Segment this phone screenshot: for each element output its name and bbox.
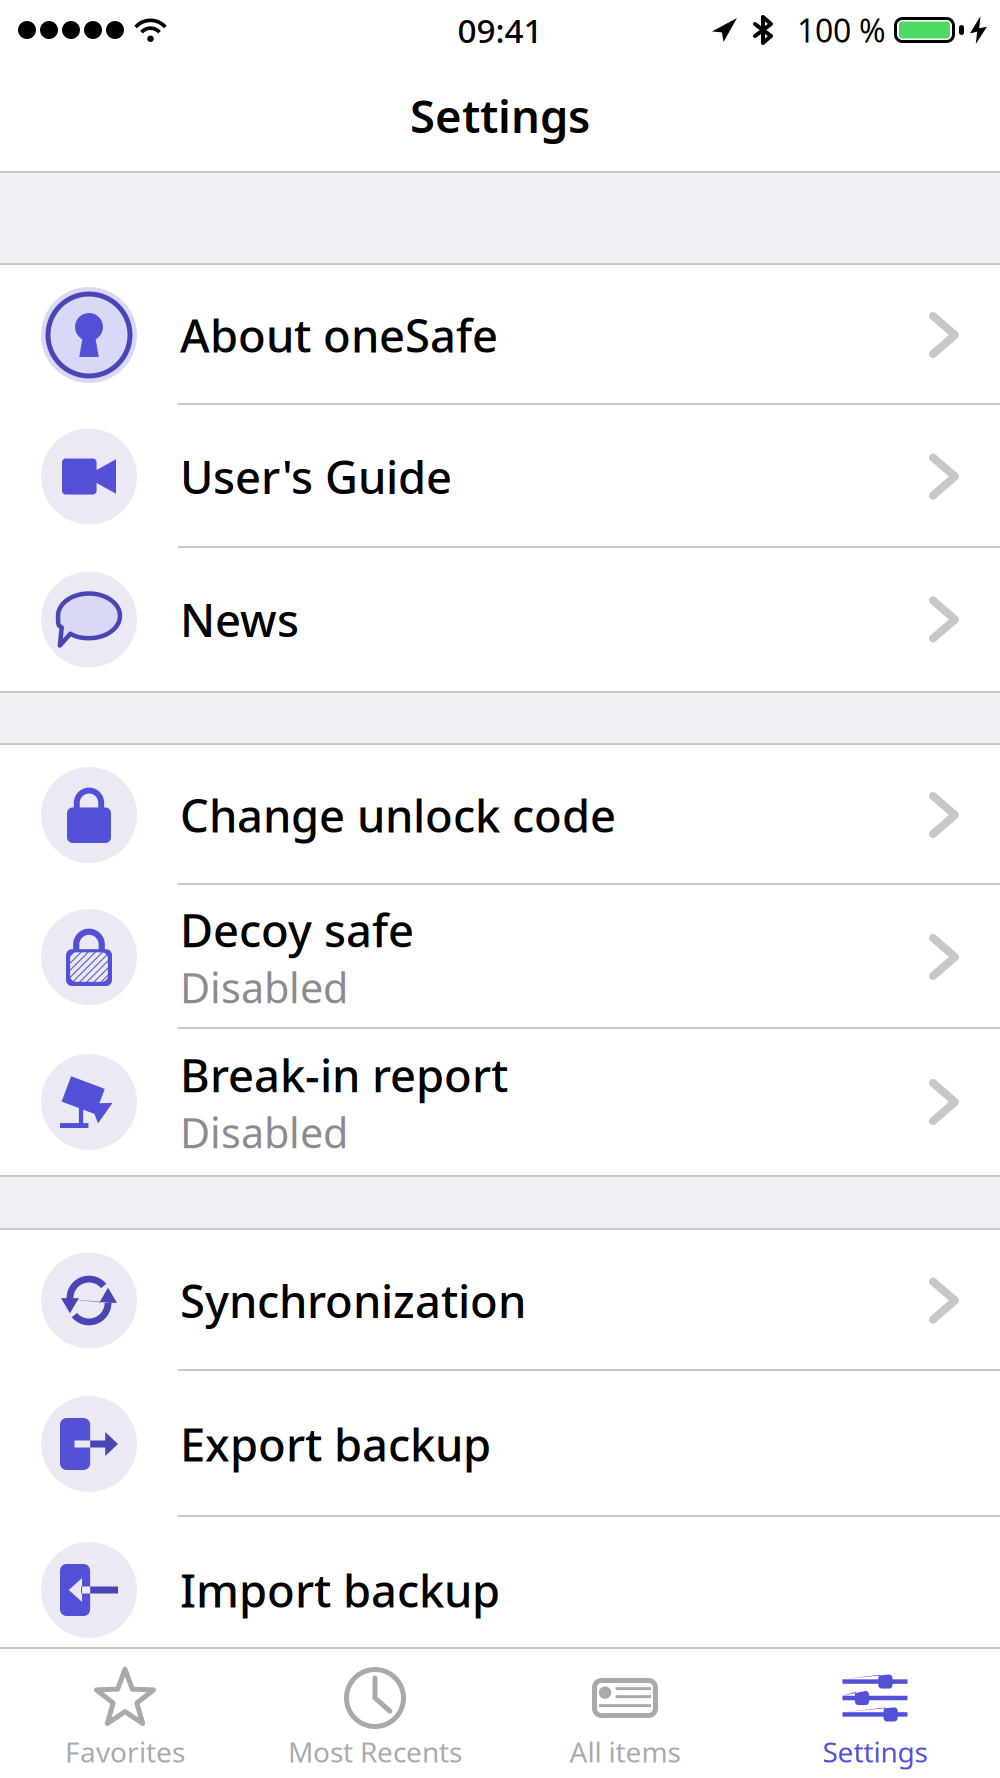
staticText: Disabled	[180, 960, 348, 1015]
staticText: News	[180, 589, 299, 650]
button[interactable]: Settings	[750, 1647, 1000, 1778]
button[interactable]: All items	[500, 1647, 750, 1778]
staticText: Settings	[410, 85, 590, 146]
button[interactable]: Change unlock code	[0, 745, 1000, 885]
staticText: Change unlock code	[180, 785, 616, 845]
staticText: 100 %	[797, 9, 886, 51]
staticText: Most Recents	[288, 1733, 462, 1770]
button[interactable]: Synchronization	[0, 1230, 1000, 1371]
staticText: Favorites	[65, 1733, 185, 1770]
button[interactable]: About oneSafe	[0, 265, 1000, 405]
button[interactable]: News	[0, 548, 1000, 691]
button[interactable]: User's Guide	[0, 405, 1000, 548]
staticText: User's Guide	[180, 446, 452, 507]
staticText: Decoy safe	[180, 899, 414, 960]
staticText: Settings	[822, 1733, 927, 1770]
button[interactable]: Most Recents	[250, 1647, 500, 1778]
button[interactable]: Break-in report	[0, 1029, 1000, 1175]
button[interactable]: Export backup	[0, 1371, 1000, 1517]
button[interactable]: Decoy safe	[0, 885, 1000, 1029]
staticText: Import backup	[180, 1560, 500, 1620]
staticText: Export backup	[180, 1414, 491, 1474]
staticText: Synchronization	[180, 1270, 526, 1331]
staticText: 09:41	[457, 8, 542, 52]
staticText: About oneSafe	[180, 305, 498, 365]
staticText: Disabled	[180, 1105, 348, 1160]
staticText: All items	[569, 1733, 680, 1770]
button[interactable]: Favorites	[0, 1647, 250, 1778]
button[interactable]: Import backup	[0, 1517, 1000, 1663]
staticText: Break-in report	[180, 1044, 508, 1105]
